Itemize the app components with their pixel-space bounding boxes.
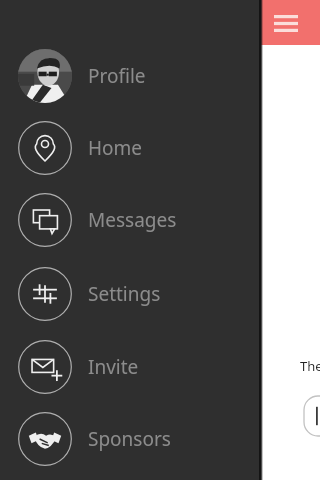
button[interactable]: Messages — [0, 184, 259, 256]
button[interactable]: Profile — [0, 40, 259, 112]
staticText: Sponsors — [88, 426, 171, 452]
staticText: Settings — [88, 281, 161, 307]
button[interactable]: Invite — [0, 331, 259, 403]
button[interactable] — [304, 396, 320, 436]
button[interactable]: Settings — [0, 258, 259, 330]
button[interactable]: Home — [0, 112, 259, 184]
button[interactable]: Sponsors — [0, 403, 259, 475]
staticText: Profile — [88, 63, 146, 89]
staticText: Messages — [88, 207, 177, 233]
staticText: Home — [88, 135, 143, 161]
button[interactable]: Open navigation drawer — [267, 4, 305, 42]
staticText: The — [300, 357, 320, 375]
staticText: Invite — [88, 354, 139, 380]
